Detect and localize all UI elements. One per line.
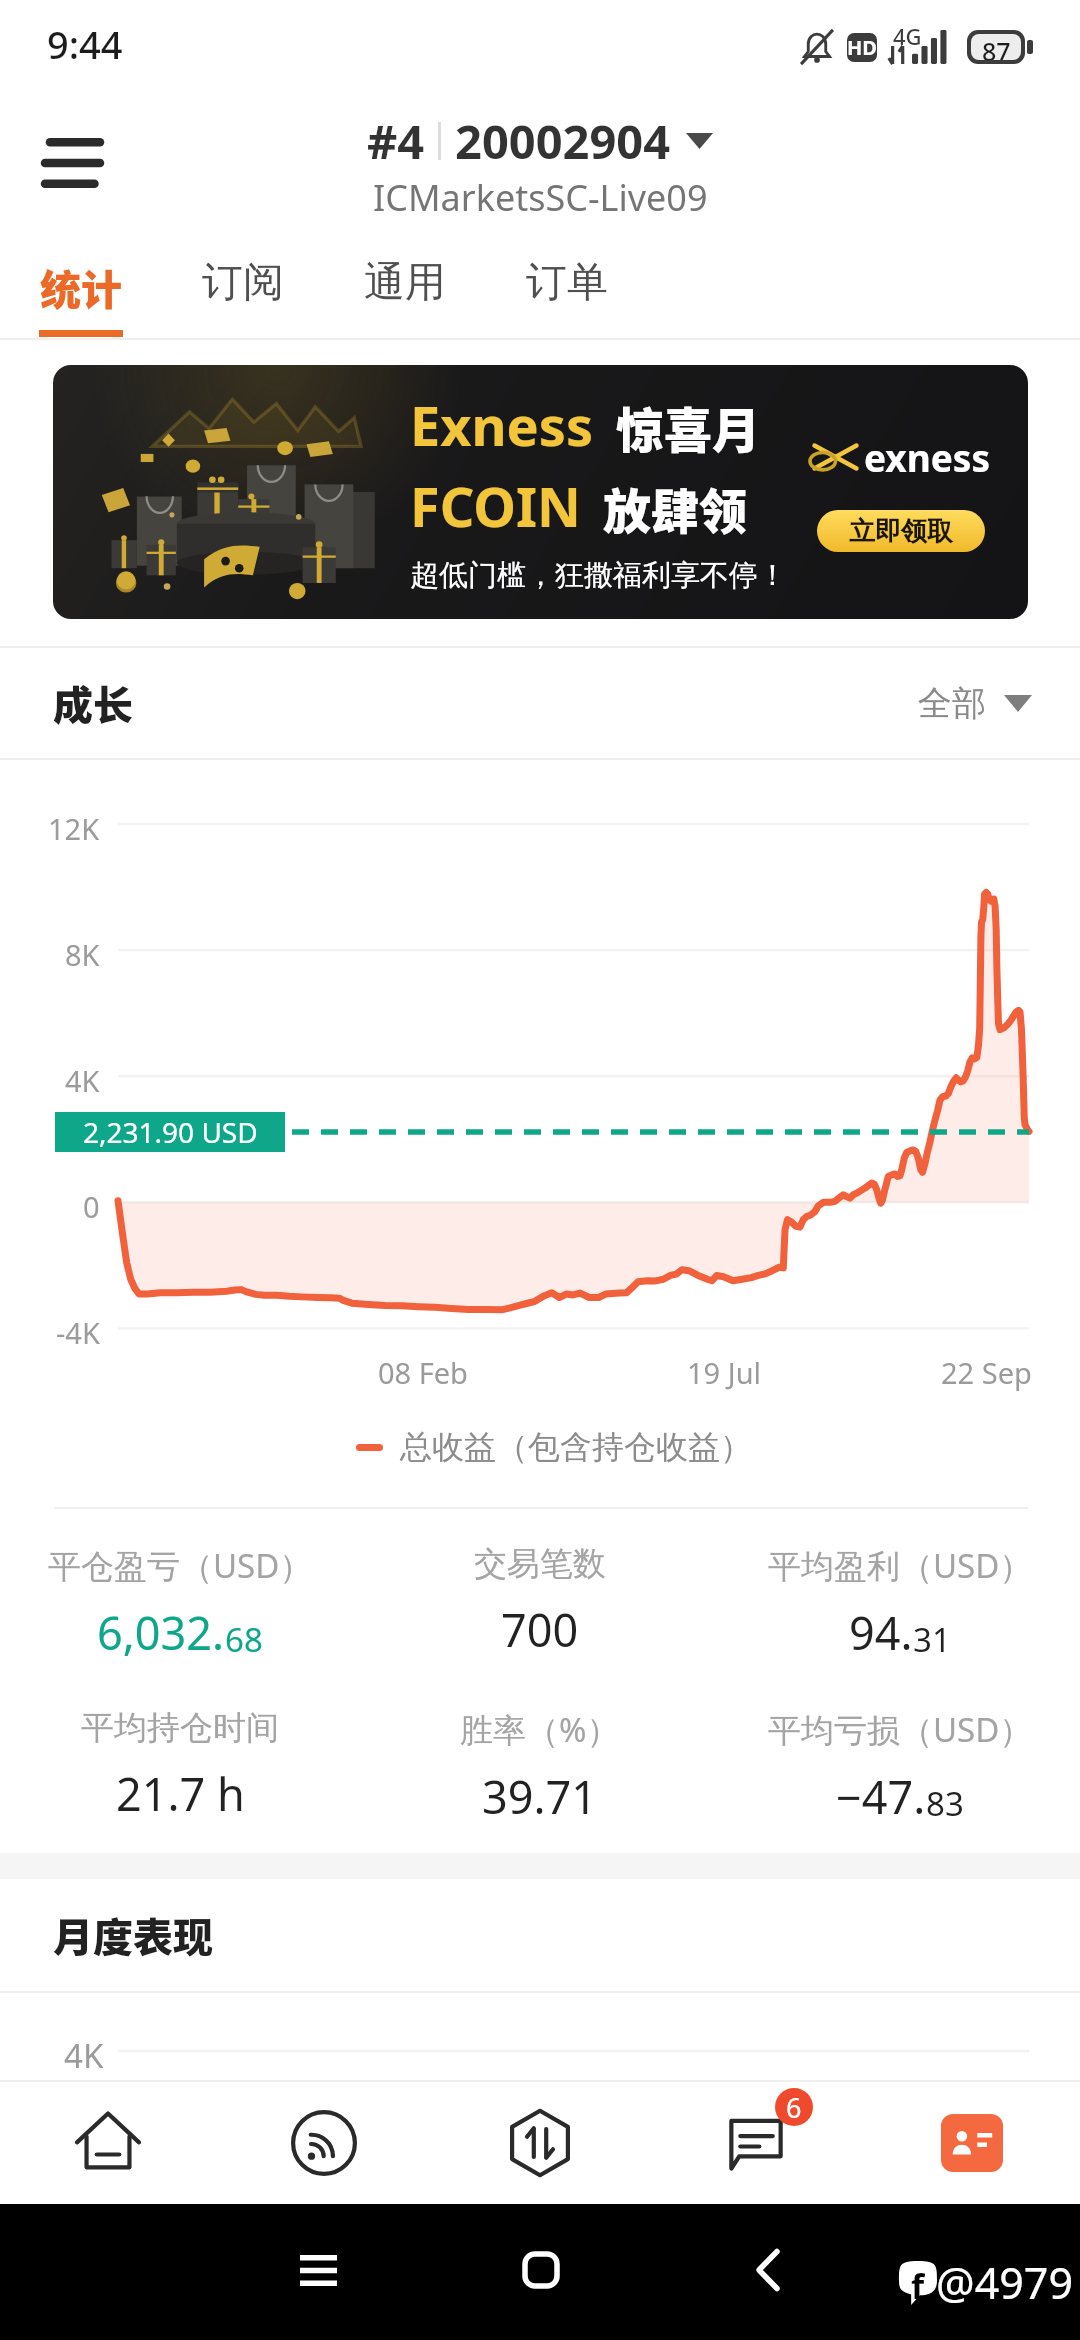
staticText: 4K	[64, 2033, 104, 2078]
staticText: 放肆领	[603, 473, 748, 543]
button[interactable]: Exness	[53, 365, 1028, 619]
staticText: 6,032.	[97, 1602, 225, 1663]
staticText: 超低门槛，狂撒福利享不停！	[410, 557, 787, 594]
staticText: 83	[926, 1781, 964, 1826]
button[interactable]: Recents	[300, 2255, 337, 2286]
staticText: 平均持仓时间	[81, 1707, 279, 1749]
staticText: Exness	[410, 388, 594, 462]
button[interactable]: 通用	[324, 232, 486, 338]
button[interactable]: 立即领取	[817, 510, 985, 552]
staticText: 39.71	[482, 1766, 598, 1827]
staticText: 通用	[364, 257, 446, 309]
staticText: −47.	[836, 1766, 926, 1827]
staticText: 立即领取	[849, 515, 953, 548]
button[interactable]: 统计	[0, 232, 162, 338]
staticText: 68	[225, 1617, 263, 1662]
staticText: 惊喜月	[616, 392, 761, 462]
staticText: 9:44	[47, 18, 123, 70]
staticText: exness	[864, 432, 991, 482]
staticText: 订单	[526, 257, 608, 309]
staticText: 6	[786, 2089, 802, 2126]
button[interactable]: News	[216, 2082, 432, 2204]
button[interactable]: Profile	[864, 2082, 1080, 2204]
staticText: 31	[913, 1617, 951, 1662]
button[interactable]: Menu	[12, 113, 132, 213]
staticText: FCOIN	[410, 469, 581, 543]
staticText: 8K	[65, 935, 100, 974]
staticText: f	[911, 2263, 925, 2307]
staticText: 22 Sep	[941, 1353, 1032, 1392]
staticText: 2,231.90 USD	[83, 1113, 258, 1151]
staticText: HD	[847, 34, 877, 61]
button[interactable]: Home	[522, 2251, 560, 2289]
staticText: 平均亏损（USD）	[768, 1707, 1033, 1752]
staticText: 87	[982, 34, 1011, 60]
staticText: #4	[367, 109, 425, 173]
staticText: 订阅	[202, 257, 284, 309]
staticText: 统计	[40, 257, 122, 316]
button[interactable]: #4	[367, 109, 713, 222]
staticText: 4K	[65, 1061, 100, 1100]
staticText: 4G	[893, 21, 922, 51]
staticText: 0	[83, 1187, 100, 1226]
button[interactable]: Messages	[648, 2082, 864, 2204]
button[interactable]: 订单	[486, 232, 648, 338]
staticText: 20002904	[455, 109, 671, 173]
staticText: 平仓盈亏（USD）	[48, 1543, 313, 1588]
staticText: 总收益（包含持仓收益）	[400, 1427, 752, 1467]
staticText: 700	[501, 1599, 579, 1660]
button[interactable]: 全部	[918, 682, 1032, 725]
staticText: 成长	[53, 674, 133, 732]
button[interactable]: Trade	[432, 2082, 648, 2204]
staticText: ICMarketsSC-Live09	[373, 173, 708, 222]
staticText: 19 Jul	[687, 1353, 762, 1392]
button[interactable]: Back	[755, 2249, 780, 2291]
staticText: @4979	[936, 2253, 1074, 2312]
staticText: 月度表现	[53, 1906, 213, 1964]
button[interactable]: Home	[0, 2082, 216, 2204]
staticText: 交易笔数	[474, 1543, 606, 1585]
staticText: 21.7 h	[116, 1763, 245, 1824]
button[interactable]: 订阅	[162, 232, 324, 338]
staticText: 08 Feb	[378, 1353, 468, 1392]
staticText: 平均盈利（USD）	[768, 1543, 1033, 1588]
staticText: 12K	[48, 809, 100, 848]
staticText: 胜率（%）	[460, 1707, 620, 1752]
staticText: -4K	[56, 1313, 100, 1352]
staticText: 94.	[849, 1602, 913, 1663]
staticText: 全部	[918, 682, 986, 725]
